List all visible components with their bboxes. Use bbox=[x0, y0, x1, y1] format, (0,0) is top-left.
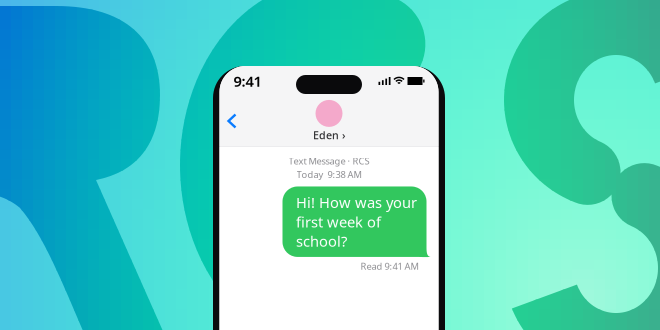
staticText: Hi! How was your first week of school? bbox=[296, 192, 417, 251]
staticText: Eden › bbox=[313, 128, 345, 142]
button[interactable]: Back bbox=[219, 105, 244, 136]
staticText: Text Message · RCS bbox=[288, 155, 369, 167]
staticText: Read 9:41 AM bbox=[360, 260, 418, 272]
staticText: Today 9:38 AM bbox=[296, 168, 361, 180]
staticText: 9:41 bbox=[233, 71, 261, 91]
